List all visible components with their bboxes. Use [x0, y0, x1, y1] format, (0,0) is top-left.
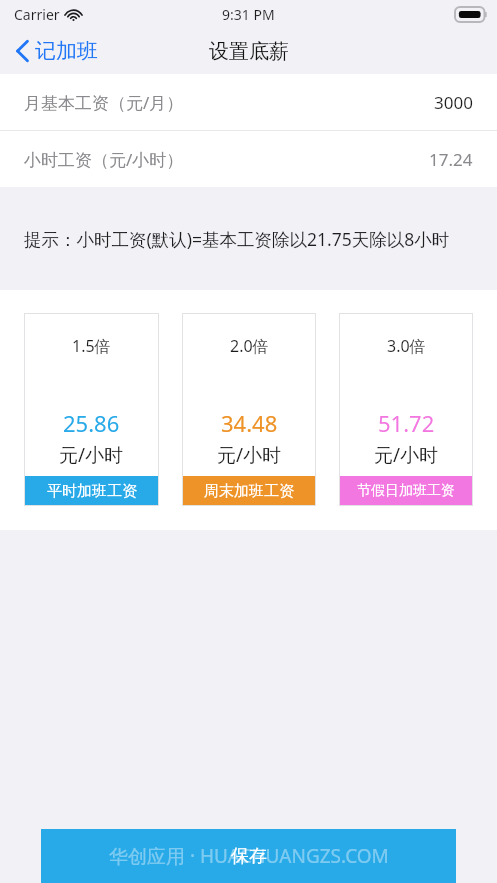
button[interactable]: 月基本工资（元/月） — [0, 74, 497, 130]
staticText: 9:31 PM — [222, 5, 275, 24]
staticText: 3.0倍 — [387, 335, 426, 357]
staticText: 记加班 — [35, 38, 98, 64]
staticText: 保存 — [231, 845, 267, 868]
staticText: 17.24 — [429, 148, 473, 171]
staticText: 3000 — [434, 91, 473, 114]
button[interactable]: 1.5倍 — [24, 313, 159, 506]
staticText: 51.72 — [378, 408, 435, 438]
staticText: 1.5倍 — [72, 335, 111, 357]
staticText: 元/小时 — [59, 442, 124, 468]
staticText: Carrier — [14, 5, 60, 24]
button[interactable]: 3.0倍 — [339, 313, 473, 506]
staticText: 2.0倍 — [230, 335, 269, 357]
button[interactable]: 2.0倍 — [182, 313, 316, 506]
other: Back — [16, 40, 29, 62]
staticText: 元/小时 — [374, 442, 439, 468]
staticText: 34.48 — [221, 408, 278, 438]
staticText: 25.86 — [63, 408, 120, 438]
staticText: 平时加班工资 — [47, 482, 137, 501]
staticText: 设置底薪 — [209, 39, 289, 64]
staticText: 元/小时 — [217, 442, 282, 468]
staticText: 提示：小时工资(默认)=基本工资除以21.75天除以8小时 — [24, 227, 450, 251]
button[interactable]: 华创应用 · HUACHUANGZS.COM — [41, 829, 456, 883]
staticText: 华创应用 · HUACHUANGZS.COM — [109, 843, 389, 869]
staticText: 节假日加班工资 — [357, 482, 455, 500]
staticText: 周末加班工资 — [204, 482, 294, 501]
button[interactable]: Back — [12, 34, 102, 68]
staticText: 月基本工资（元/月） — [24, 91, 184, 114]
staticText: 小时工资（元/小时） — [24, 148, 184, 171]
button[interactable]: 小时工资（元/小时） — [0, 131, 497, 187]
